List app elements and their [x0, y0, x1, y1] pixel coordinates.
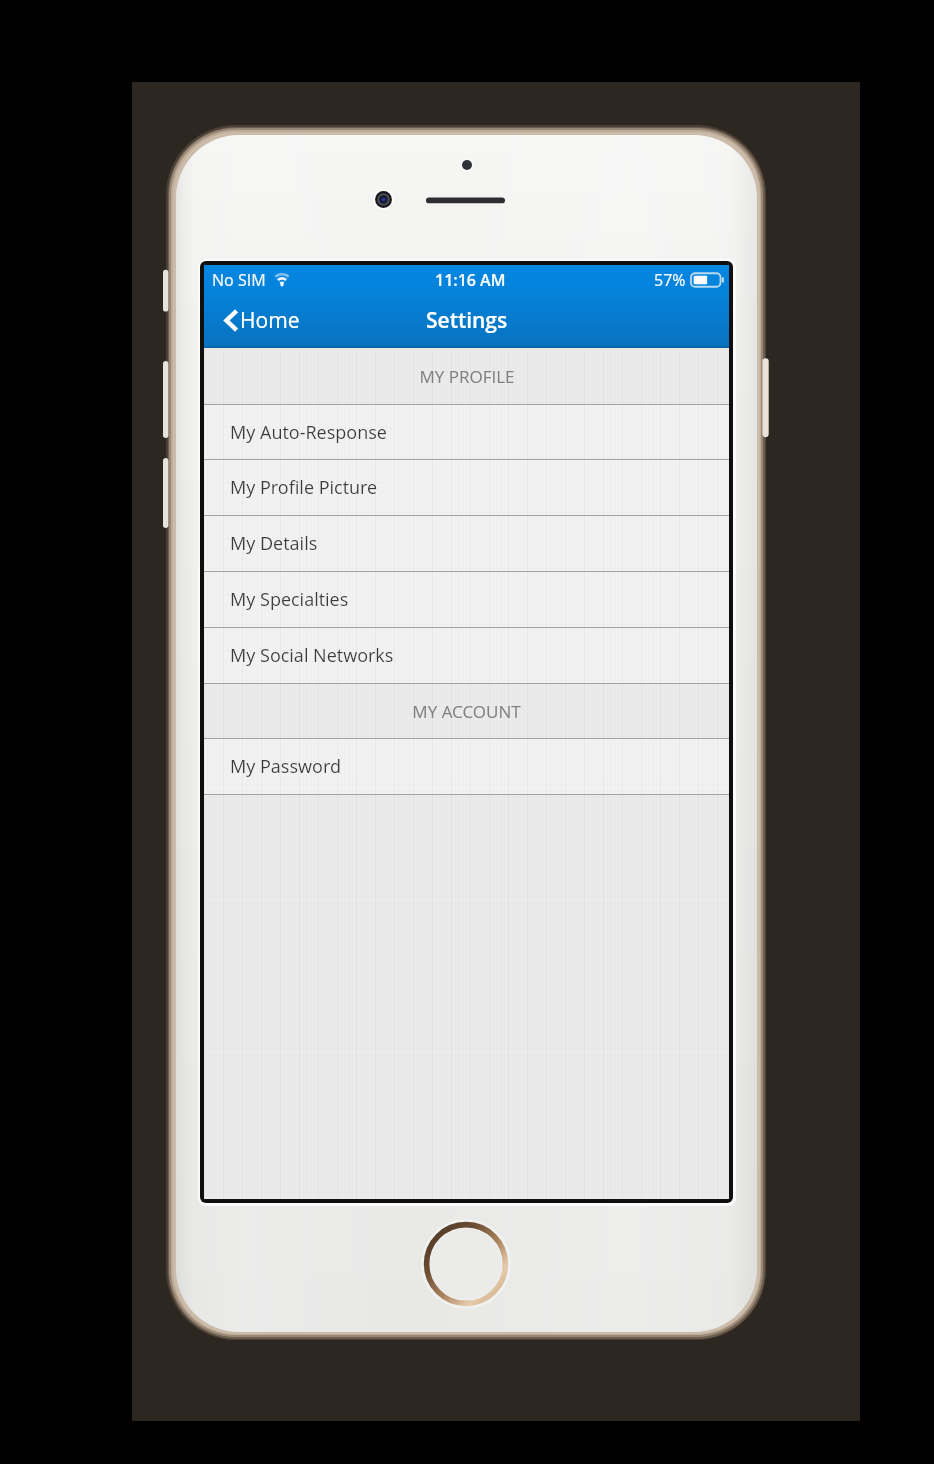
staticText: My Password: [230, 754, 341, 779]
button[interactable]: My Social Networks: [204, 627, 729, 683]
staticText: My Profile Picture: [230, 475, 378, 500]
staticText: 11:16 AM: [435, 269, 506, 291]
staticText: My Social Networks: [230, 643, 394, 668]
staticText: My Details: [230, 531, 318, 556]
button[interactable]: Back to Home: [204, 302, 314, 339]
button[interactable]: My Profile Picture: [204, 459, 729, 515]
button[interactable]: My Auto-Response: [204, 404, 729, 460]
button[interactable]: My Specialties: [204, 571, 729, 627]
staticText: Home: [240, 306, 300, 335]
staticText: 57%: [654, 269, 686, 291]
staticText: MY ACCOUNT: [412, 700, 521, 723]
staticText: My Specialties: [230, 587, 349, 612]
staticText: MY PROFILE: [419, 365, 515, 388]
staticText: My Auto-Response: [230, 420, 387, 445]
button[interactable]: My Password: [204, 738, 729, 794]
button[interactable]: My Details: [204, 515, 729, 571]
staticText: Settings: [426, 306, 508, 335]
staticText: No SIM: [212, 269, 266, 291]
